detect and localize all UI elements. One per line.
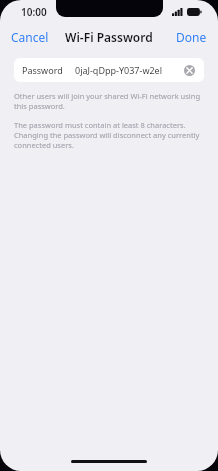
button[interactable]: Clear text [183,64,196,77]
staticText: Other users will join your shared Wi-Fi … [14,91,204,111]
button[interactable]: Cancel [0,25,60,49]
button[interactable]: Password [14,58,204,82]
staticText: Done [176,29,207,45]
staticText: Password [22,64,63,76]
button[interactable]: Done [165,25,218,49]
staticText: Wi-Fi Password [65,29,153,45]
staticText: The password must contain at least 8 cha… [14,120,204,150]
staticText: Cancel [11,29,49,45]
staticText: 10:00 [21,5,47,19]
staticText: 0jaJ-qDpp-Y037-w2el [75,64,183,76]
